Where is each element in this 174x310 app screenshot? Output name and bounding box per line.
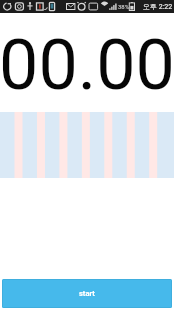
staticText: 38% xyxy=(118,3,130,10)
button[interactable]: start xyxy=(2,279,172,308)
staticText: start xyxy=(79,289,95,298)
button[interactable]: 00.00 xyxy=(0,13,174,112)
staticText: 00.00 xyxy=(0,24,174,106)
staticText: 오후 2:22 xyxy=(143,2,173,11)
